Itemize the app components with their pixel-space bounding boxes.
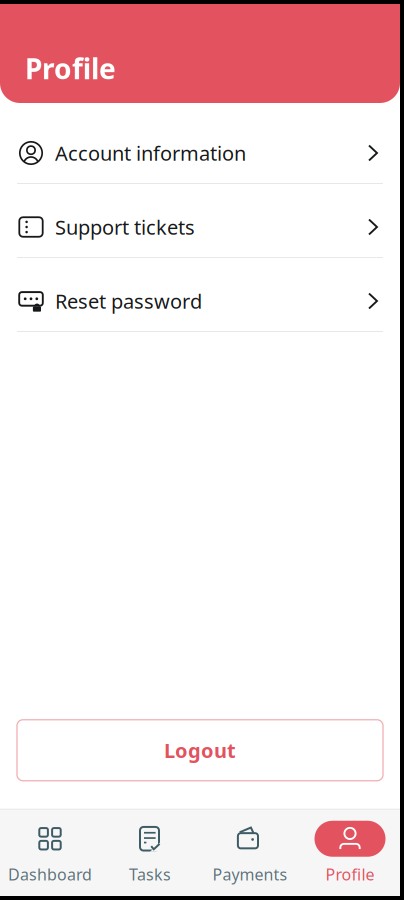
staticText: Logout [164,737,236,764]
button[interactable]: Dashboard [0,821,100,885]
button[interactable]: Tasks [100,821,200,885]
button[interactable]: Payments [200,821,300,885]
staticText: Dashboard [8,864,92,885]
button[interactable]: Support tickets [0,184,400,258]
staticText: Support tickets [55,214,195,240]
button[interactable]: Profile [300,821,400,885]
button[interactable]: Logout [17,720,383,781]
staticText: Profile [25,50,116,87]
staticText: Profile [325,864,374,885]
button[interactable]: Account information [0,110,400,184]
staticText: Account information [55,140,246,166]
staticText: Payments [212,864,287,885]
staticText: Reset password [55,288,202,314]
button[interactable]: Reset password [0,258,400,332]
staticText: Tasks [129,864,171,885]
